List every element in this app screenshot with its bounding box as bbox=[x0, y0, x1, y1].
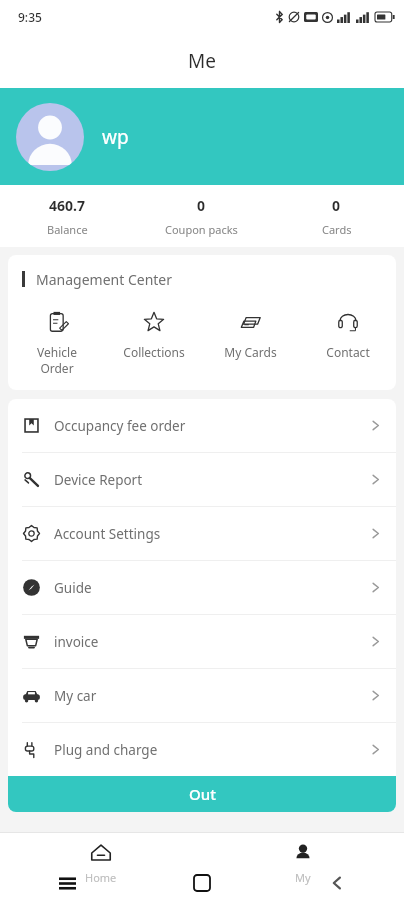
staticText: Balance bbox=[47, 222, 88, 237]
staticText: Contact bbox=[326, 344, 370, 360]
button[interactable]: Occupancy fee order bbox=[8, 399, 396, 452]
button[interactable]: 0 bbox=[134, 185, 269, 247]
staticText: Account Settings bbox=[54, 525, 161, 543]
button[interactable]: wp bbox=[0, 88, 404, 185]
button[interactable]: My car bbox=[8, 669, 396, 722]
staticText: Device Report bbox=[54, 471, 143, 489]
button[interactable]: 460.7 bbox=[0, 185, 134, 247]
staticText: Cards bbox=[322, 222, 352, 237]
staticText: Home bbox=[85, 870, 117, 885]
staticText: Me bbox=[188, 48, 216, 74]
button[interactable]: My bbox=[202, 833, 404, 900]
staticText: 9:35 bbox=[18, 9, 42, 25]
button[interactable]: Plug and charge bbox=[8, 723, 396, 776]
staticText: Guide bbox=[54, 579, 92, 597]
button[interactable]: 0 bbox=[269, 185, 404, 247]
staticText: Plug and charge bbox=[54, 741, 158, 759]
button[interactable]: invoice bbox=[8, 615, 396, 668]
staticText: Occupancy fee order bbox=[54, 417, 186, 435]
staticText: invoice bbox=[54, 633, 99, 651]
staticText: My bbox=[295, 870, 311, 885]
button[interactable]: Vehicle Order bbox=[8, 307, 105, 380]
staticText: My Cards bbox=[224, 344, 277, 360]
staticText: Management Center bbox=[36, 270, 173, 289]
button[interactable]: Home bbox=[0, 833, 202, 900]
staticText: 460.7 bbox=[49, 196, 85, 215]
staticText: 0 bbox=[332, 196, 341, 215]
button[interactable]: Collections bbox=[105, 307, 202, 364]
staticText: Collections bbox=[123, 344, 185, 360]
button[interactable]: Account Settings bbox=[8, 507, 396, 560]
staticText: My car bbox=[54, 687, 97, 705]
staticText: Out bbox=[189, 784, 216, 804]
button[interactable]: Device Report bbox=[8, 453, 396, 506]
button[interactable]: Guide bbox=[8, 561, 396, 614]
button[interactable]: Out bbox=[8, 776, 396, 812]
staticText: Coupon packs bbox=[165, 222, 238, 237]
button[interactable]: Contact bbox=[299, 307, 396, 364]
staticText: wp bbox=[102, 124, 129, 150]
button[interactable]: My Cards bbox=[202, 307, 299, 364]
staticText: 0 bbox=[197, 196, 206, 215]
staticText: Vehicle Order bbox=[37, 344, 77, 376]
